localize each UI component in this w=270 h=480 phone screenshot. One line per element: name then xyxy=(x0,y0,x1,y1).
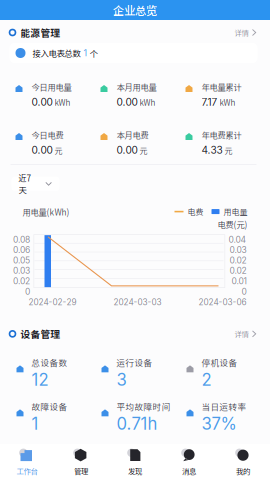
staticText: 0.03 xyxy=(13,266,30,276)
staticText: kWh xyxy=(54,96,70,108)
staticText: 1 xyxy=(31,414,38,434)
staticText: 3 xyxy=(116,370,126,390)
button[interactable]: 消息 xyxy=(162,444,216,480)
staticText: 2024-03-03 xyxy=(113,297,161,307)
staticText: 0.03 xyxy=(229,245,246,255)
button[interactable]: 管理 xyxy=(54,444,108,480)
staticText: 管理 xyxy=(74,466,88,476)
staticText: 12 xyxy=(31,370,48,390)
staticText: 接入电表总数 xyxy=(32,47,80,59)
staticText: 0.71h xyxy=(116,414,157,434)
staticText: 平均故障时间 xyxy=(116,400,170,413)
staticText: 用电量(kWh) xyxy=(22,206,69,218)
staticText: 37% xyxy=(201,414,236,434)
staticText: 当日运转率 xyxy=(201,400,246,413)
staticText: 详情 xyxy=(234,328,248,339)
staticText: 停机设备 xyxy=(201,356,237,369)
staticText: 0.00 xyxy=(116,144,137,156)
staticText: 元 xyxy=(224,144,232,156)
staticText: 电费 xyxy=(187,206,203,217)
staticText: 年电费累计 xyxy=(201,129,241,141)
staticText: 4.33 xyxy=(201,144,222,156)
staticText: 本月用电量 xyxy=(116,81,156,93)
staticText: 0.00 xyxy=(31,144,52,156)
button[interactable]: 详情 xyxy=(224,326,257,341)
staticText: 0.08 xyxy=(13,234,30,245)
staticText: 故障设备 xyxy=(31,400,67,413)
staticText: 0.05 xyxy=(13,255,30,265)
staticText: 7.17 xyxy=(201,96,217,108)
staticText: 元 xyxy=(139,144,147,156)
staticText: kWh xyxy=(219,96,235,108)
button[interactable]: 详情 xyxy=(224,25,257,40)
button[interactable]: 近7天 xyxy=(11,177,59,191)
staticText: 企业总览 xyxy=(113,2,157,18)
staticText: 0 xyxy=(241,286,246,297)
staticText: 0.00 xyxy=(116,96,137,108)
staticText: 电费(元) xyxy=(217,218,247,230)
staticText: 工作台 xyxy=(16,466,37,476)
staticText: 用电量 xyxy=(223,206,247,217)
staticText: 2024-03-06 xyxy=(198,297,246,307)
staticText: 0.01 xyxy=(231,276,246,286)
staticText: 元 xyxy=(54,144,62,156)
staticText: 0.06 xyxy=(13,245,30,255)
staticText: 今日电费 xyxy=(31,129,63,141)
staticText: 详情 xyxy=(234,27,248,38)
staticText: 本月电费 xyxy=(116,129,148,141)
staticText: 发现 xyxy=(128,466,142,476)
button[interactable]: 工作台 xyxy=(0,444,54,480)
staticText: 近7天 xyxy=(18,172,31,196)
staticText: 0.00 xyxy=(31,96,52,108)
staticText: kWh xyxy=(139,96,155,108)
staticText: 总设备数 xyxy=(31,356,67,369)
staticText: 我的 xyxy=(236,466,250,476)
staticText: 0.02 xyxy=(229,266,246,276)
staticText: 2 xyxy=(201,370,211,390)
button[interactable]: 发现 xyxy=(108,444,162,480)
button[interactable]: 我的 xyxy=(216,444,270,480)
staticText: 1 xyxy=(83,48,87,58)
staticText: 0 xyxy=(25,286,30,297)
staticText: 年电量累计 xyxy=(201,81,241,93)
staticText: 2024-02-29 xyxy=(28,297,76,307)
staticText: 个 xyxy=(89,47,97,59)
staticText: 今日用电量 xyxy=(31,81,71,93)
staticText: 运行设备 xyxy=(116,356,152,369)
staticText: 消息 xyxy=(182,466,196,476)
staticText: 0.02 xyxy=(13,276,30,286)
staticText: 设备管理 xyxy=(20,327,60,341)
staticText: 能源管理 xyxy=(20,25,60,39)
staticText: 0.04 xyxy=(228,234,246,245)
staticText: 0.02 xyxy=(229,255,246,265)
